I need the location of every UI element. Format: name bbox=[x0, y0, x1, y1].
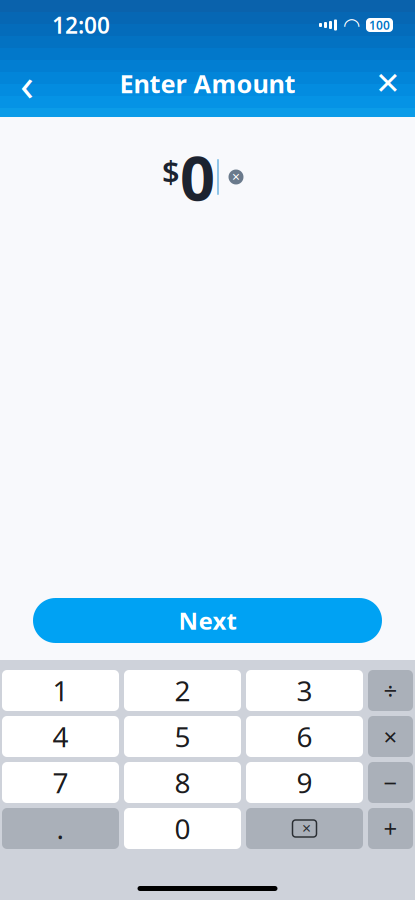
staticText: 8 bbox=[174, 764, 190, 801]
staticText: Enter Amount bbox=[119, 67, 295, 100]
staticText: − bbox=[383, 767, 397, 798]
staticText: 3 bbox=[296, 672, 312, 709]
button[interactable]: 5 bbox=[124, 716, 241, 757]
staticText: ‹ bbox=[20, 53, 34, 114]
staticText: 7 bbox=[52, 764, 68, 801]
button[interactable]: Backspace bbox=[246, 808, 363, 849]
button[interactable]: Close bbox=[366, 61, 410, 105]
button[interactable]: Multiply bbox=[368, 716, 413, 757]
button[interactable]: Divide bbox=[368, 670, 413, 711]
button[interactable]: 0 bbox=[124, 808, 241, 849]
staticText: 4 bbox=[52, 718, 68, 755]
button[interactable]: 3 bbox=[246, 670, 363, 711]
button[interactable]: Add bbox=[368, 808, 413, 849]
button[interactable]: Subtract bbox=[368, 762, 413, 803]
staticText: ✕ bbox=[231, 171, 240, 183]
button[interactable]: Clear amount bbox=[219, 160, 253, 194]
staticText: + bbox=[383, 813, 397, 844]
staticText: ✕ bbox=[375, 66, 401, 101]
staticText: 9 bbox=[296, 764, 312, 801]
staticText: 12:00 bbox=[52, 10, 110, 40]
button[interactable]: Next bbox=[33, 598, 382, 643]
staticText: . bbox=[56, 810, 64, 847]
staticText: 0 bbox=[174, 810, 190, 847]
button[interactable]: 4 bbox=[2, 716, 119, 757]
staticText: 2 bbox=[174, 672, 190, 709]
staticText: 5 bbox=[174, 718, 190, 755]
button[interactable]: Back bbox=[5, 61, 49, 105]
staticText: $ bbox=[162, 151, 180, 191]
button[interactable]: 9 bbox=[246, 762, 363, 803]
staticText: ÷ bbox=[383, 675, 397, 706]
button[interactable]: 2 bbox=[124, 670, 241, 711]
staticText: Next bbox=[178, 605, 236, 636]
button[interactable]: 6 bbox=[246, 716, 363, 757]
staticText: 6 bbox=[296, 718, 312, 755]
staticText: 100 bbox=[369, 17, 390, 33]
button[interactable]: 7 bbox=[2, 762, 119, 803]
button[interactable]: 8 bbox=[124, 762, 241, 803]
staticText: × bbox=[383, 721, 397, 752]
staticText: 0 bbox=[180, 136, 215, 218]
staticText: 1 bbox=[52, 672, 68, 709]
button[interactable]: . bbox=[2, 808, 119, 849]
staticText: ✕ bbox=[301, 822, 311, 835]
staticText: ◠ bbox=[344, 14, 359, 36]
button[interactable]: 1 bbox=[2, 670, 119, 711]
